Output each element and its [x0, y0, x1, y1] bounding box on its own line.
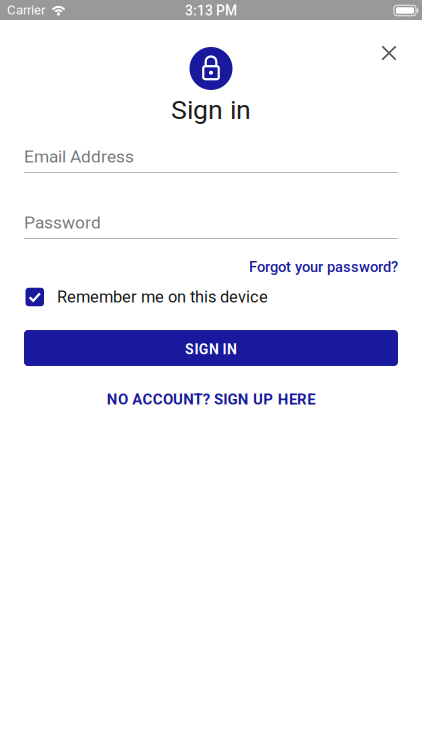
button[interactable]: Remember me on this device: [25, 287, 268, 307]
staticText: SIGN IN: [185, 341, 237, 358]
button[interactable]: NO ACCOUNT? SIGN UP HERE: [107, 391, 315, 408]
staticText: 3:13 PM: [185, 3, 237, 19]
staticText: Sign in: [171, 94, 251, 126]
staticText: Password: [24, 212, 101, 233]
staticText: Carrier: [7, 2, 45, 18]
staticText: NO ACCOUNT? SIGN UP HERE: [107, 391, 315, 408]
button[interactable]: Forgot your password?: [249, 258, 398, 276]
staticText: Remember me on this device: [57, 287, 268, 307]
button[interactable]: Close: [372, 36, 406, 70]
button[interactable]: SIGN IN: [24, 330, 398, 366]
staticText: Email Address: [24, 146, 134, 167]
staticText: Forgot your password?: [249, 258, 398, 276]
